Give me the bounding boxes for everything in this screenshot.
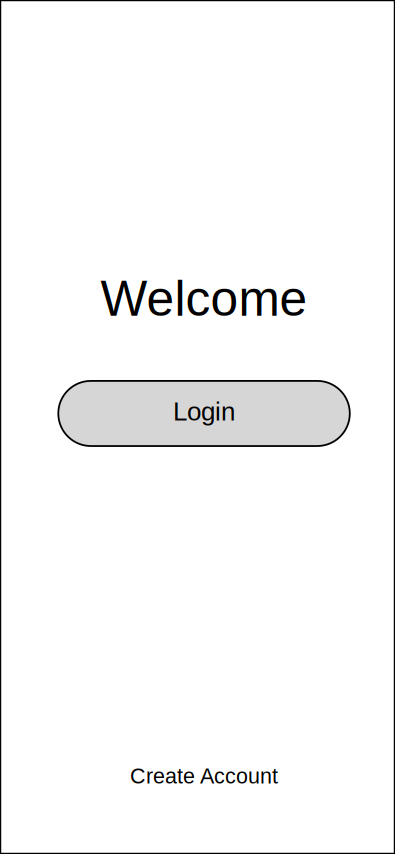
staticText: Login (173, 397, 235, 426)
button[interactable]: Login (58, 381, 350, 446)
staticText: Create Account (130, 764, 278, 788)
button[interactable]: Create Account (130, 764, 278, 788)
staticText: Welcome (100, 271, 307, 326)
